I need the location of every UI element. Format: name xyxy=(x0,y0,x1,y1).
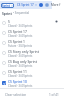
button[interactable]: CS Bug only Sprint xyxy=(0,58,64,68)
button[interactable]: More f xyxy=(51,3,61,7)
staticText: CS Sprint 1 xyxy=(8,39,25,43)
button[interactable]: CS Sprint 17 xyxy=(0,28,64,38)
staticText: CS Sprint 10 xyxy=(8,79,27,83)
button[interactable]: 5 xyxy=(0,18,64,28)
staticText: 1 of 41 xyxy=(49,93,59,97)
button[interactable]: Clear selection xyxy=(5,93,27,97)
button[interactable]: Account xyxy=(39,3,43,7)
staticText: Sprint xyxy=(2,4,10,8)
button[interactable]: Sprint xyxy=(1,3,14,8)
staticText: Future · 3/4 Sprints xyxy=(8,44,32,48)
staticText: Closed · 3/4 Sprints xyxy=(8,24,33,28)
staticText: • Sequential xyxy=(13,11,30,15)
staticText: CS Sprint 17 xyxy=(8,29,27,33)
staticText: Sprint xyxy=(2,11,12,15)
staticText: Closed · 3/4 Sprints xyxy=(8,84,33,88)
staticText: Closed · 3/4 Sprints xyxy=(8,54,33,58)
button[interactable]: Add filter xyxy=(45,3,49,7)
staticText: CS Bug only Sprint xyxy=(8,59,37,63)
button[interactable]: CS Sprint 11 xyxy=(0,68,64,78)
button[interactable]: CS Sprint 1 xyxy=(0,38,64,48)
button[interactable]: CS Story only Sprint xyxy=(0,48,64,58)
button[interactable]: CS Sprint 17 xyxy=(17,3,37,7)
staticText: CS Sprint 11 xyxy=(8,69,27,73)
staticText: CS Story only Sprint xyxy=(8,49,39,53)
staticText: CS Sprint 17 xyxy=(17,3,34,7)
button[interactable]: More options xyxy=(54,19,58,23)
staticText: 5 xyxy=(8,19,10,23)
staticText: Closed · 3/4 Sprints xyxy=(8,64,33,68)
button[interactable]: CS Sprint 10 xyxy=(0,78,64,88)
staticText: Closed · 3/4 Sprints xyxy=(8,74,33,78)
staticText: Closed · 3/4 Sprints xyxy=(8,34,33,38)
